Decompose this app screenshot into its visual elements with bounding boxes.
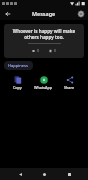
button[interactable]: Back bbox=[15, 169, 25, 179]
button[interactable]: Copy bbox=[11, 75, 24, 91]
button[interactable]: 0 bbox=[31, 47, 41, 54]
staticText: Whoever is happy will make others happy … bbox=[8, 28, 80, 40]
staticText: 0 bbox=[54, 48, 57, 53]
button[interactable]: Recents bbox=[64, 169, 74, 179]
button[interactable]: WhatsApp bbox=[32, 75, 55, 91]
button[interactable]: Share bbox=[62, 75, 77, 91]
staticText: 0 bbox=[37, 48, 40, 53]
button[interactable]: 0 bbox=[48, 47, 58, 54]
staticText: Happiness bbox=[8, 63, 29, 68]
button[interactable]: Back bbox=[2, 8, 13, 19]
button[interactable]: Whoever is happy will make others happy … bbox=[4, 24, 84, 58]
button[interactable]: Happiness bbox=[4, 61, 33, 70]
staticText: Message bbox=[32, 10, 56, 17]
button[interactable]: Settings bbox=[75, 8, 86, 19]
staticText: Copy bbox=[13, 85, 22, 90]
button[interactable]: Home bbox=[39, 169, 49, 179]
staticText: Share bbox=[64, 85, 75, 90]
staticText: WhatsApp bbox=[34, 85, 53, 90]
